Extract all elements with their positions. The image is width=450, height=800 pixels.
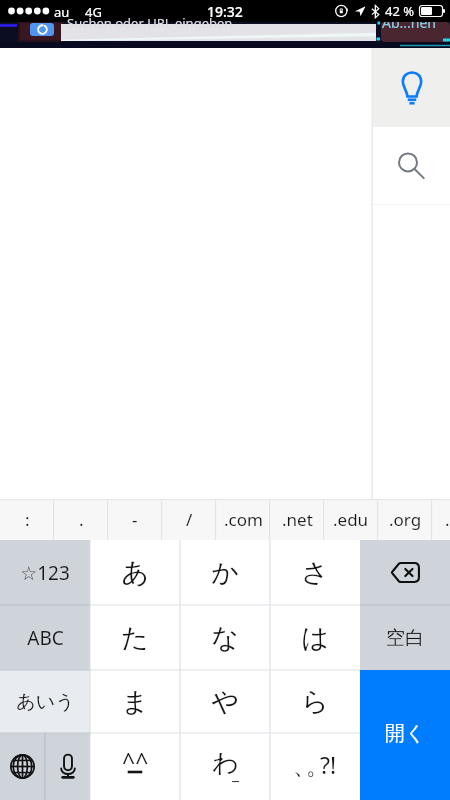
button[interactable]: ☆123 [0,540,90,605]
staticText: .net [282,508,313,531]
staticText: は [301,621,329,655]
button[interactable]: ま [90,670,180,733]
button[interactable]: ^^ [90,733,180,800]
staticText: あ [121,556,149,590]
button[interactable]: Suchen oder URL eingeben [61,24,376,41]
staticText: Suchen oder URL eingeben [67,14,233,31]
staticText: か [211,556,239,590]
staticText: や [211,685,239,719]
staticText: - [132,508,138,531]
button[interactable]: . [54,499,108,540]
staticText: わ [212,747,239,780]
staticText: さ [301,556,329,590]
staticText: 19:32 [207,2,243,21]
button[interactable]: Tabs [0,22,450,48]
button[interactable]: ら [270,670,360,733]
button[interactable]: - [108,499,162,540]
button[interactable]: た [90,605,180,670]
staticText: 開く [385,721,426,746]
staticText: au [54,3,70,21]
button[interactable]: / [162,499,216,540]
button[interactable]: あいう [0,670,90,733]
staticText: ^^ [122,745,149,776]
button[interactable]: ABC [0,605,90,670]
button[interactable]: 空白 [360,605,450,670]
button[interactable]: あ [90,540,180,605]
staticText: 42 % [385,2,415,20]
button[interactable]: .edu [324,499,378,540]
staticText: 、 [293,752,306,781]
staticText: 。 [306,752,320,781]
button[interactable]: Delete [360,540,450,605]
button[interactable]: わ [180,733,270,800]
button[interactable]: .ne [432,499,450,540]
staticText: ま [121,685,149,719]
staticText: / [186,508,193,531]
staticText: 4G [85,3,102,21]
staticText: ?! [320,749,337,780]
button[interactable]: や [180,670,270,733]
staticText: : [25,508,30,531]
staticText: な [211,621,239,655]
staticText: ら [301,685,329,719]
staticText: 空白 [386,626,424,650]
button[interactable]: .net [270,499,324,540]
button[interactable]: .com [216,499,270,540]
staticText: .ne [445,508,450,531]
button[interactable]: Suggestions [373,48,450,127]
staticText: あいう [16,690,75,714]
staticText: .org [389,508,422,531]
staticText: Ab...nen [382,22,437,32]
button[interactable]: : [0,499,54,540]
staticText: .com [224,508,263,531]
button[interactable]: さ [270,540,360,605]
button[interactable]: Dictate [45,733,90,800]
staticText: .edu [333,508,369,531]
staticText: . [79,508,84,531]
button[interactable]: 、 [270,733,360,800]
button[interactable]: 開く [360,670,450,800]
staticText: た [121,621,149,655]
button[interactable]: Search [373,127,450,204]
button[interactable]: な [180,605,270,670]
button[interactable]: Ab...nen [381,22,450,42]
button[interactable]: は [270,605,360,670]
staticText: _ [232,763,240,785]
button[interactable]: Tabs [30,23,54,36]
button[interactable]: か [180,540,270,605]
button[interactable]: Change keyboard [0,733,45,800]
staticText: ABC [27,625,64,651]
staticText: ☆123 [20,560,70,586]
button[interactable]: .org [378,499,432,540]
